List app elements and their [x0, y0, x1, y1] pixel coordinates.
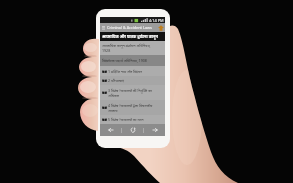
button[interactable]: 5 विशेष न्यायालयों का गठन — [100, 115, 165, 124]
staticText: आपराधिक कानून संशोधन अधिनियम, 1928 — [102, 43, 151, 53]
staticText: 3 विशेष न्यायालयों की नियुक्ति का अधिकार — [108, 88, 153, 98]
button[interactable]: विस्फोटक पदार्थ अधिनियम, 1908 — [100, 55, 165, 66]
staticText: 4 विशेष न्यायालयों द्वारा विचारणीय अपराध — [108, 103, 153, 113]
button[interactable]: 2 परिभाषाएं — [100, 76, 165, 85]
button[interactable]: Refresh — [122, 124, 143, 136]
staticText: 2 परिभाषाएं — [108, 78, 124, 83]
button[interactable]: आपराधिक और घातक दुर्घटना कानून — [100, 32, 165, 41]
button[interactable]: आपराधिक कानून संशोधन अधिनियम, 1928 — [100, 41, 165, 55]
button[interactable]: Menu — [100, 23, 107, 32]
button[interactable]: Back — [100, 124, 121, 136]
staticText: विस्फोटक पदार्थ अधिनियम, 1908 — [102, 58, 147, 63]
button[interactable]: 4 विशेष न्यायालयों द्वारा विचारणीय अपराध — [100, 100, 165, 115]
button[interactable]: 3 विशेष न्यायालयों की नियुक्ति का अधिकार — [100, 85, 165, 100]
staticText: 5 विशेष न्यायालयों का गठन — [108, 117, 144, 122]
staticText: 4:14 PM — [149, 18, 164, 23]
staticText: 1 संक्षिप्त नाम और विस्तार — [108, 69, 142, 74]
staticText: Criminal & Accident Laws — [107, 25, 152, 30]
button[interactable]: Home — [156, 23, 165, 32]
staticText: आपराधिक और घातक दुर्घटना कानून — [102, 34, 158, 39]
button[interactable]: 1 संक्षिप्त नाम और विस्तार — [100, 66, 165, 76]
button[interactable]: Forward — [144, 124, 165, 136]
